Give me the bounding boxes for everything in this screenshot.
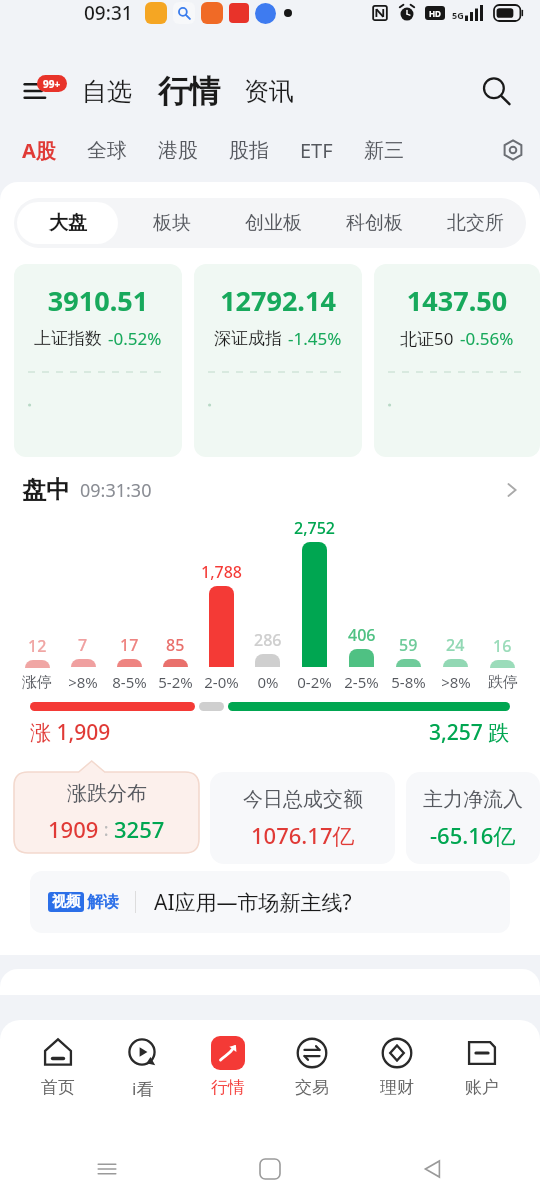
button[interactable]: 1437.50 bbox=[374, 264, 540, 457]
staticText: 09:31:30 bbox=[80, 478, 152, 503]
staticText: 1076.17亿 bbox=[251, 820, 355, 850]
button[interactable]: 资讯 bbox=[240, 70, 298, 113]
button[interactable]: Recent apps bbox=[90, 1152, 124, 1186]
button[interactable]: Settings bbox=[494, 131, 532, 169]
staticText: 16 bbox=[493, 635, 512, 657]
button[interactable]: 视频 bbox=[30, 871, 510, 933]
button[interactable]: 账户 bbox=[455, 1034, 509, 1100]
staticText: 85 bbox=[166, 634, 185, 656]
button[interactable]: i看 bbox=[116, 1034, 170, 1102]
button[interactable]: 港股 bbox=[156, 132, 200, 169]
staticText: 286 bbox=[254, 629, 282, 651]
button[interactable]: Back bbox=[416, 1152, 450, 1186]
staticText: 2-5% bbox=[344, 672, 379, 692]
staticText: -1.45% bbox=[288, 327, 342, 350]
staticText: 0-2% bbox=[297, 672, 332, 692]
button[interactable]: 大盘 bbox=[17, 202, 118, 244]
staticText: 资讯 bbox=[244, 76, 294, 107]
staticText: 跌停 bbox=[488, 673, 518, 692]
staticText: 99+ bbox=[43, 77, 61, 91]
button[interactable]: Search bbox=[474, 69, 518, 113]
button[interactable]: 主力净流入 bbox=[406, 772, 540, 864]
button[interactable]: 3910.51 bbox=[14, 264, 182, 457]
staticText: 新三 bbox=[364, 138, 404, 163]
staticText: A股 bbox=[22, 137, 56, 164]
staticText: 3910.51 bbox=[22, 282, 174, 319]
staticText: 行情 bbox=[158, 72, 220, 111]
button[interactable]: 行情 bbox=[154, 68, 224, 115]
staticText: 8-5% bbox=[112, 672, 147, 692]
staticText: 406 bbox=[348, 624, 376, 646]
staticText: i看 bbox=[132, 1077, 154, 1100]
button[interactable]: Home bbox=[253, 1152, 287, 1186]
staticText: 今日总成交额 bbox=[243, 787, 363, 812]
staticText: 账户 bbox=[465, 1077, 499, 1098]
staticText: 3257 bbox=[114, 814, 165, 844]
staticText: 1909 bbox=[48, 814, 99, 844]
staticText: 理财 bbox=[380, 1077, 414, 1098]
staticText: 5G bbox=[452, 9, 464, 21]
staticText: AI应用—市场新主线? bbox=[154, 888, 352, 917]
staticText: 科创板 bbox=[346, 211, 403, 235]
staticText: 北证50 bbox=[400, 327, 454, 350]
staticText: 17 bbox=[120, 634, 139, 656]
button[interactable]: 新三 bbox=[362, 132, 406, 169]
staticText: >8% bbox=[441, 672, 471, 692]
staticText: 创业板 bbox=[245, 211, 302, 235]
button[interactable]: 科创板 bbox=[327, 202, 422, 244]
button[interactable]: 涨跌分布 bbox=[14, 772, 199, 853]
staticText: 交易 bbox=[295, 1077, 329, 1098]
staticText: 深证成指 bbox=[214, 328, 282, 349]
button[interactable]: ETF bbox=[298, 131, 335, 170]
staticText: 港股 bbox=[158, 138, 198, 163]
staticText: 自选 bbox=[82, 76, 132, 107]
button[interactable]: 板块 bbox=[124, 202, 220, 244]
staticText: ETF bbox=[300, 137, 333, 164]
staticText: 12 bbox=[28, 635, 47, 657]
button[interactable]: 全球 bbox=[85, 132, 129, 169]
button[interactable]: 北交所 bbox=[428, 202, 523, 244]
staticText: 大盘 bbox=[49, 211, 87, 235]
staticText: 1437.50 bbox=[382, 282, 532, 319]
staticText: : bbox=[99, 817, 114, 842]
staticText: 首页 bbox=[41, 1077, 75, 1098]
staticText: 59 bbox=[399, 634, 418, 656]
button[interactable]: 自选 bbox=[78, 70, 136, 113]
staticText: >8% bbox=[68, 672, 98, 692]
staticText: 北交所 bbox=[447, 211, 504, 235]
staticText: 涨跌分布 bbox=[67, 781, 147, 806]
staticText: 盘中 bbox=[22, 475, 70, 505]
staticText: 视频 bbox=[52, 893, 80, 911]
staticText: 全球 bbox=[87, 138, 127, 163]
staticText: 5-8% bbox=[391, 672, 426, 692]
staticText: -65.16亿 bbox=[430, 820, 516, 850]
staticText: 解读 bbox=[87, 892, 119, 912]
staticText: HD bbox=[429, 8, 441, 19]
staticText: 股指 bbox=[229, 138, 269, 163]
staticText: 5-2% bbox=[158, 672, 193, 692]
button[interactable]: 创业板 bbox=[226, 202, 321, 244]
staticText: 涨停 bbox=[22, 673, 52, 692]
button[interactable]: 今日总成交额 bbox=[210, 772, 395, 864]
staticText: -0.52% bbox=[108, 327, 162, 350]
button[interactable]: 股指 bbox=[227, 132, 271, 169]
staticText: 上证指数 bbox=[34, 328, 102, 349]
button[interactable]: 12792.14 bbox=[194, 264, 362, 457]
staticText: 2,752 bbox=[294, 517, 335, 539]
staticText: 7 bbox=[78, 634, 88, 656]
button[interactable]: 首页 bbox=[31, 1034, 85, 1100]
staticText: 板块 bbox=[153, 211, 191, 235]
staticText: 3,257 跌 bbox=[429, 718, 510, 747]
staticText: 24 bbox=[446, 634, 465, 656]
staticText: 0% bbox=[257, 672, 279, 692]
button[interactable]: 行情 bbox=[201, 1034, 255, 1100]
button[interactable]: 交易 bbox=[285, 1034, 339, 1100]
staticText: 主力净流入 bbox=[423, 787, 523, 812]
staticText: 09:31 bbox=[84, 0, 133, 26]
button[interactable]: A股 bbox=[20, 131, 58, 170]
staticText: 12792.14 bbox=[202, 282, 354, 319]
button[interactable]: 盘中 bbox=[22, 475, 522, 505]
staticText: 涨 1,909 bbox=[30, 718, 111, 747]
button[interactable]: Menu bbox=[18, 68, 64, 114]
button[interactable]: 理财 bbox=[370, 1034, 424, 1100]
